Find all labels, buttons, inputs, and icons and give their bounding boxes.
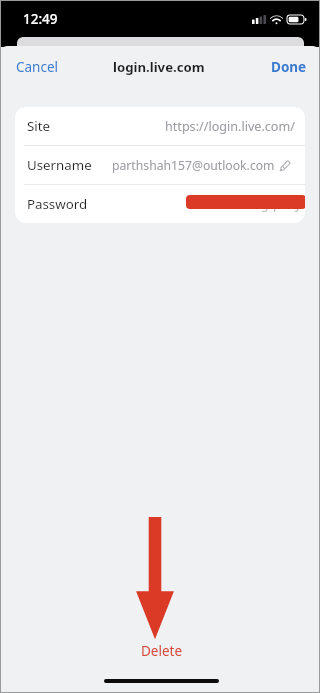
button[interactable]: Site [15,107,305,145]
staticText: Site [27,117,51,135]
staticText: parthshah157@outlook.com [112,157,275,174]
staticText: 12:49 [23,10,58,28]
staticText: Cancel [16,58,59,76]
button[interactable]: Delete [135,639,189,663]
staticText: Username [27,156,92,174]
button[interactable]: Cancel [1,51,71,83]
staticText: 3cmhgq.m y [228,196,302,213]
button[interactable]: Username [15,146,305,184]
button[interactable]: Done [259,51,319,83]
staticText: login.live.com [113,58,205,76]
staticText: Delete [141,642,183,660]
other: Edit username [279,160,291,172]
staticText: Password [27,195,88,213]
staticText: Done [271,58,307,76]
staticText: https://login.live.com/ [165,118,295,135]
